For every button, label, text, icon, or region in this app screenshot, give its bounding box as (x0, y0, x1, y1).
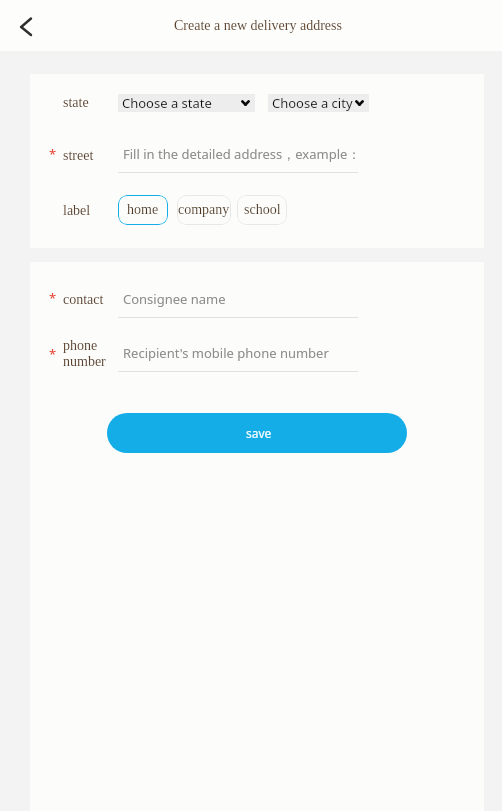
button[interactable]: home (118, 195, 168, 225)
staticText: phone (63, 338, 98, 354)
staticText: school (244, 202, 281, 218)
staticText: number (63, 354, 106, 370)
staticText: Choose a state (122, 94, 212, 112)
staticText: * (49, 145, 57, 163)
staticText: label (63, 203, 91, 219)
staticText: Consignee name (123, 290, 226, 308)
button[interactable]: Back (11, 11, 41, 41)
button[interactable]: company (177, 195, 231, 225)
button[interactable]: Choose a state (118, 94, 255, 112)
staticText: Create a new delivery address (174, 18, 342, 34)
staticText: Choose a city (272, 94, 353, 112)
button[interactable]: Choose a city (268, 94, 369, 112)
staticText: * (49, 345, 57, 363)
staticText: save (246, 425, 272, 441)
staticText: Fill in the detailed address，example： (123, 145, 361, 163)
button[interactable]: save (107, 413, 407, 453)
staticText: street (63, 148, 94, 164)
staticText: * (49, 289, 57, 307)
staticText: home (127, 202, 159, 218)
staticText: company (178, 202, 230, 218)
button[interactable]: school (237, 195, 287, 225)
staticText: Recipient's mobile phone number (123, 344, 329, 362)
staticText: state (63, 95, 89, 111)
staticText: contact (63, 292, 104, 308)
